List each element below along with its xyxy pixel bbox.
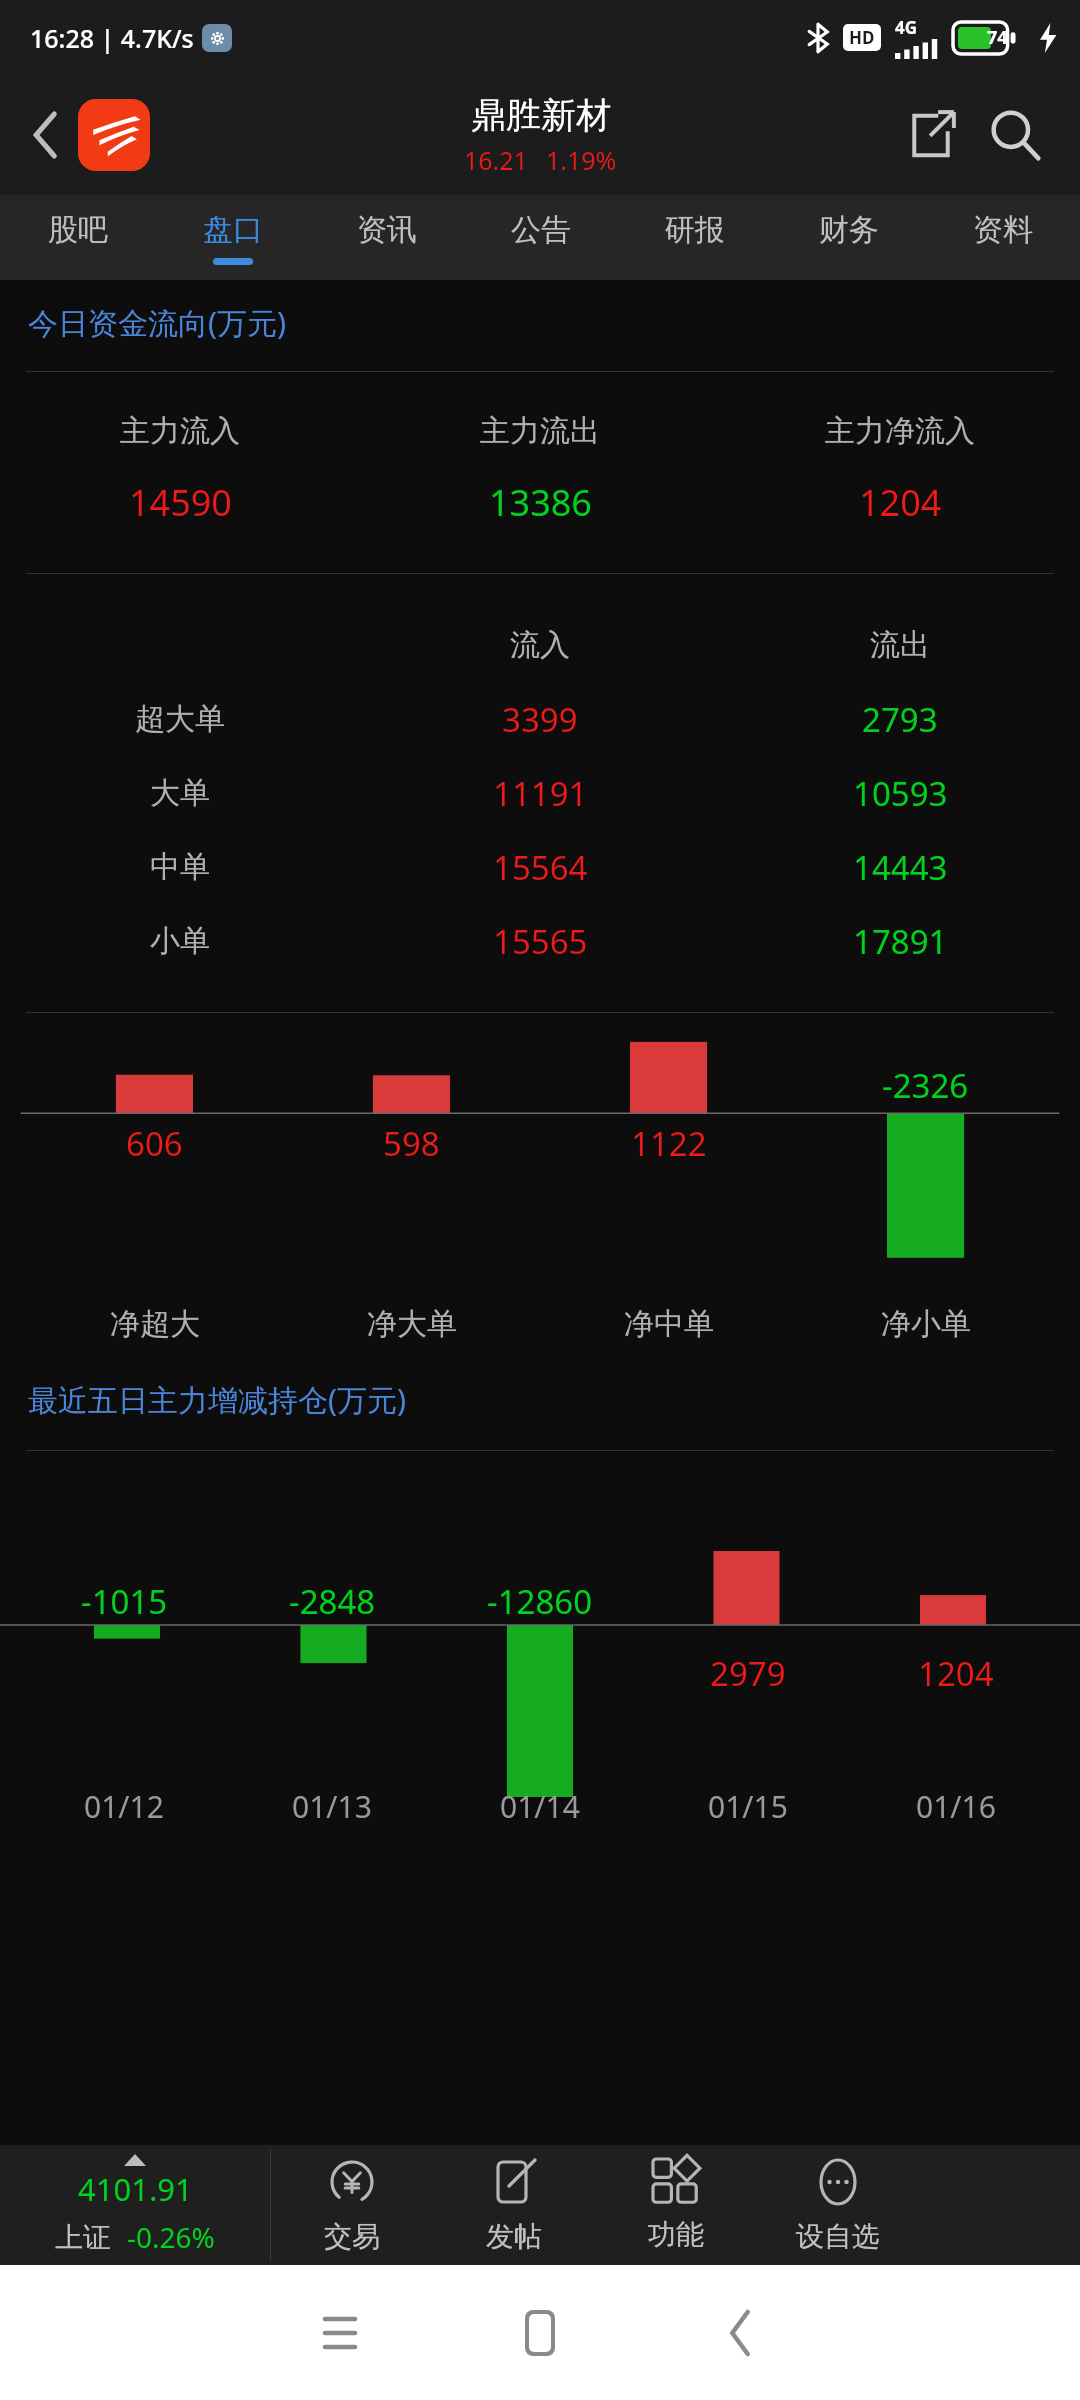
staticText: 598 — [383, 1121, 440, 1166]
button[interactable]: Recents — [300, 2293, 380, 2373]
staticText: 4101.91 — [78, 2168, 193, 2210]
staticText: -0.26% — [127, 2218, 215, 2256]
button[interactable]: 功能 — [595, 2145, 757, 2265]
staticText: 净大单 — [367, 1305, 457, 1343]
staticText: 净小单 — [881, 1305, 971, 1343]
staticText: HD — [849, 26, 875, 49]
button[interactable]: 财务 — [772, 195, 926, 280]
staticText: 16.21 — [464, 143, 528, 177]
staticText: 01/14 — [500, 1786, 580, 1827]
staticText: 01/13 — [292, 1786, 372, 1827]
staticText: 大单 — [150, 774, 210, 812]
staticText: 流入 — [510, 626, 570, 664]
button[interactable]: Home — [500, 2293, 580, 2373]
staticText: 流出 — [870, 626, 930, 664]
staticText: 主力净流入 — [825, 412, 975, 450]
staticText: 设自选 — [796, 2219, 880, 2254]
staticText: 研报 — [665, 211, 725, 249]
staticText: 中单 — [150, 848, 210, 886]
staticText: 超大单 — [135, 700, 225, 738]
staticText: 11191 — [493, 771, 588, 816]
staticText: 最近五日主力增减持仓(万元) — [28, 1379, 406, 1420]
staticText: -1015 — [81, 1579, 168, 1624]
staticText: 1122 — [631, 1121, 707, 1166]
button[interactable]: Search — [976, 96, 1054, 174]
staticText: 主力流入 — [120, 412, 240, 450]
staticText: 4G — [895, 16, 918, 39]
staticText: -12860 — [487, 1579, 593, 1624]
staticText: 01/12 — [84, 1786, 164, 1827]
staticText: 功能 — [648, 2217, 704, 2252]
staticText: -2326 — [882, 1063, 969, 1108]
staticText: 盘口 — [203, 211, 263, 249]
staticText: 净超大 — [110, 1305, 200, 1343]
staticText: 净中单 — [624, 1305, 714, 1343]
button[interactable]: Back — [700, 2293, 780, 2373]
staticText: 14443 — [853, 845, 948, 890]
button[interactable]: 设自选 — [757, 2145, 919, 2265]
staticText: 上证 — [55, 2220, 111, 2255]
staticText: 资料 — [973, 211, 1033, 249]
staticText: 主力流出 — [480, 412, 600, 450]
staticText: 交易 — [324, 2219, 380, 2254]
staticText: 13386 — [489, 478, 592, 527]
staticText: 606 — [126, 1121, 183, 1166]
staticText: 1204 — [918, 1651, 994, 1696]
staticText: 17891 — [853, 919, 948, 964]
staticText: 15565 — [493, 919, 588, 964]
staticText: 小单 — [150, 922, 210, 960]
staticText: 1204 — [859, 478, 942, 527]
staticText: 14590 — [129, 478, 232, 527]
button[interactable]: 研报 — [618, 195, 772, 280]
staticText: 公告 — [511, 211, 571, 249]
staticText: 2793 — [862, 697, 938, 742]
staticText: -2848 — [289, 1579, 376, 1624]
staticText: 74 — [987, 25, 1008, 50]
staticText: 3399 — [502, 697, 578, 742]
staticText: 鼎胜新材 — [471, 93, 611, 137]
staticText: 财务 — [819, 211, 879, 249]
button[interactable]: 公告 — [464, 195, 618, 280]
staticText: 发帖 — [486, 2219, 542, 2254]
staticText: 01/16 — [916, 1786, 996, 1827]
button[interactable]: App logo — [78, 99, 150, 171]
staticText: 资讯 — [357, 211, 417, 249]
button[interactable]: 4101.91 — [0, 2145, 270, 2265]
staticText: 股吧 — [48, 211, 108, 249]
staticText: 10593 — [853, 771, 948, 816]
staticText: 15564 — [493, 845, 588, 890]
button[interactable]: 交易 — [271, 2145, 433, 2265]
button[interactable]: Back — [18, 107, 74, 163]
staticText: 01/15 — [708, 1786, 788, 1827]
button[interactable]: 资料 — [926, 195, 1080, 280]
button[interactable]: 发帖 — [433, 2145, 595, 2265]
button[interactable]: 盘口 — [155, 195, 310, 280]
button[interactable]: 股吧 — [0, 195, 155, 280]
staticText: 今日资金流向(万元) — [28, 302, 286, 343]
button[interactable]: Share — [894, 98, 968, 172]
staticText: 1.19% — [546, 143, 617, 177]
staticText: 2979 — [710, 1651, 786, 1696]
staticText: 16:28 | 4.7K/s — [30, 21, 194, 55]
button[interactable]: 资讯 — [310, 195, 464, 280]
